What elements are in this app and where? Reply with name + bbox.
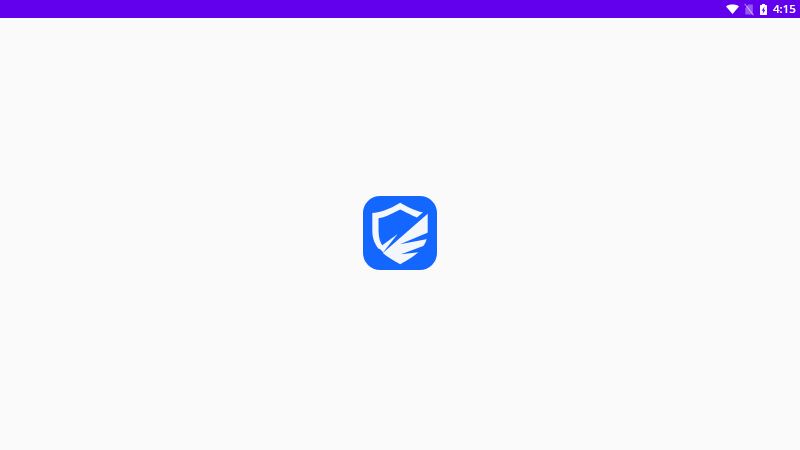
staticText: 4:15 <box>773 1 796 17</box>
other: No SIM card <box>745 4 753 15</box>
other: Wi-Fi <box>726 4 739 14</box>
other: Battery charging <box>760 4 767 15</box>
button[interactable]: App icon <box>363 196 437 270</box>
